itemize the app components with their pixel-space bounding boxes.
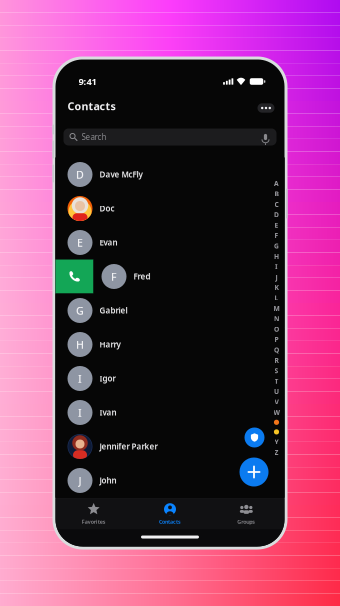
button[interactable]: Add contact	[239, 457, 268, 486]
button[interactable]: Contacts	[132, 498, 208, 530]
button[interactable]: Favorites	[55, 498, 132, 530]
staticText: Fred	[133, 271, 150, 282]
staticText: P	[274, 335, 278, 344]
staticText: Contacts	[67, 99, 115, 113]
staticText: Favorites	[82, 518, 106, 525]
staticText: W	[273, 408, 279, 417]
staticText: E	[274, 221, 278, 230]
button[interactable]: More options	[257, 99, 274, 113]
button[interactable]: Verified badge	[244, 427, 264, 447]
staticText: I	[275, 262, 278, 271]
staticText: C	[274, 200, 278, 209]
staticText: D	[76, 167, 84, 182]
button[interactable]: H	[55, 327, 284, 361]
staticText: Contacts	[159, 518, 181, 525]
staticText: A	[274, 179, 279, 188]
staticText: U	[274, 387, 279, 396]
staticText: S	[274, 366, 278, 375]
staticText: Evan	[99, 237, 117, 248]
staticText: Ivan	[99, 407, 116, 418]
staticText: Q	[274, 345, 279, 354]
staticText: Search	[81, 132, 106, 142]
button[interactable]: D	[55, 157, 284, 191]
staticText: H	[274, 252, 279, 261]
staticText: G	[76, 303, 84, 318]
button[interactable]: E	[55, 225, 284, 259]
staticText: R	[274, 356, 278, 365]
button[interactable]: J	[55, 463, 284, 497]
staticText: F	[111, 269, 117, 284]
staticText: N	[274, 314, 279, 323]
staticText: 9:41	[78, 75, 96, 88]
staticText: B	[274, 189, 278, 198]
staticText: F	[274, 231, 278, 240]
staticText: Igor	[99, 373, 115, 384]
staticText: O	[274, 325, 279, 334]
button[interactable]: I	[55, 395, 284, 429]
staticText: I	[78, 405, 82, 420]
staticText: Jennifer Parker	[99, 441, 157, 452]
staticText: D	[274, 210, 279, 219]
staticText: I	[78, 371, 82, 386]
staticText: Z	[274, 448, 278, 457]
staticText: John	[99, 475, 116, 486]
staticText: J	[275, 273, 277, 282]
staticText: K	[274, 283, 278, 292]
button[interactable]: F	[93, 259, 284, 293]
staticText: M	[273, 304, 279, 313]
button[interactable]: Groups	[208, 498, 284, 530]
button[interactable]: G	[55, 293, 284, 327]
button[interactable]: I	[55, 361, 284, 395]
button[interactable]: Doc	[55, 191, 284, 225]
staticText: H	[76, 337, 84, 352]
staticText: Groups	[237, 518, 255, 525]
button[interactable]: Search	[63, 128, 276, 145]
staticText: Harry	[99, 339, 120, 350]
staticText: Gabriel	[99, 305, 127, 316]
button[interactable]: Call Fred	[55, 259, 93, 293]
staticText: Dave McFly	[99, 169, 142, 180]
staticText: E	[77, 235, 83, 250]
staticText: V	[274, 397, 278, 406]
staticText: Doc	[99, 203, 114, 214]
staticText: G	[274, 241, 279, 250]
staticText: Y	[274, 437, 278, 446]
staticText: J	[78, 473, 81, 488]
button[interactable]: Jennifer Parker	[55, 429, 284, 463]
staticText: L	[274, 293, 278, 302]
staticText: T	[274, 377, 278, 386]
